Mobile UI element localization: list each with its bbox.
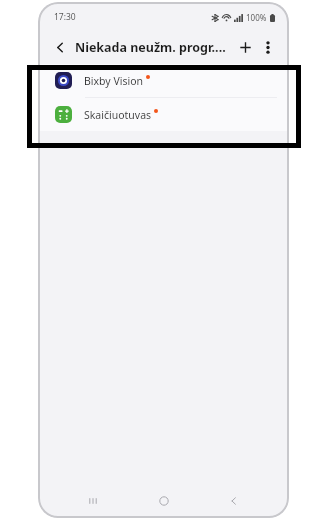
button[interactable]: More options [258,37,278,57]
button[interactable]: Skaičiuotuvas [40,98,287,131]
staticText: Skaičiuotuvas [84,108,152,122]
staticText: 17:30 [54,11,76,23]
button[interactable]: Add [234,36,256,58]
button[interactable]: Bixby Vision [40,64,287,97]
button[interactable]: Home [147,486,181,516]
button[interactable]: Back [50,37,70,57]
button[interactable]: Recent apps [76,486,110,516]
staticText: 100% [246,12,267,23]
staticText: Bixby Vision [84,74,144,88]
button[interactable]: Back [217,486,251,516]
staticText: Niekada neužm. progr.... [75,39,234,56]
